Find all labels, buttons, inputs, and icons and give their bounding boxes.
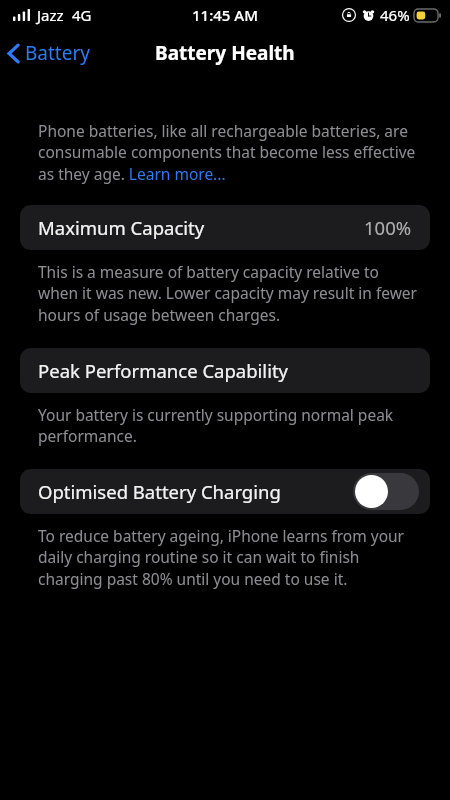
staticText: 11:45 AM <box>192 5 258 25</box>
staticText: Optimised Battery Charging <box>38 479 281 504</box>
staticText: To reduce battery ageing, iPhone learns … <box>38 525 420 590</box>
staticText: 4G <box>72 5 92 25</box>
staticText: Battery <box>25 40 90 66</box>
staticText: This is a measure of battery capacity re… <box>38 261 420 326</box>
button[interactable]: Optimised Battery Charging toggle, off <box>353 473 419 510</box>
button[interactable]: Battery <box>0 36 98 70</box>
staticText: Maximum Capacity <box>38 215 205 240</box>
button[interactable]: Optimised Battery Charging <box>20 469 430 514</box>
staticText: Your battery is currently supporting nor… <box>38 404 420 447</box>
staticText: 46% <box>380 5 410 25</box>
staticText: Jazz <box>37 5 64 25</box>
staticText: 100% <box>364 215 412 240</box>
staticText: Battery Health <box>155 40 295 66</box>
button[interactable]: Maximum Capacity <box>20 205 430 250</box>
button[interactable]: Peak Performance Capability <box>20 348 430 393</box>
staticText: Peak Performance Capability <box>38 358 289 383</box>
staticText: Phone batteries, like all rechargeable b… <box>38 120 420 185</box>
